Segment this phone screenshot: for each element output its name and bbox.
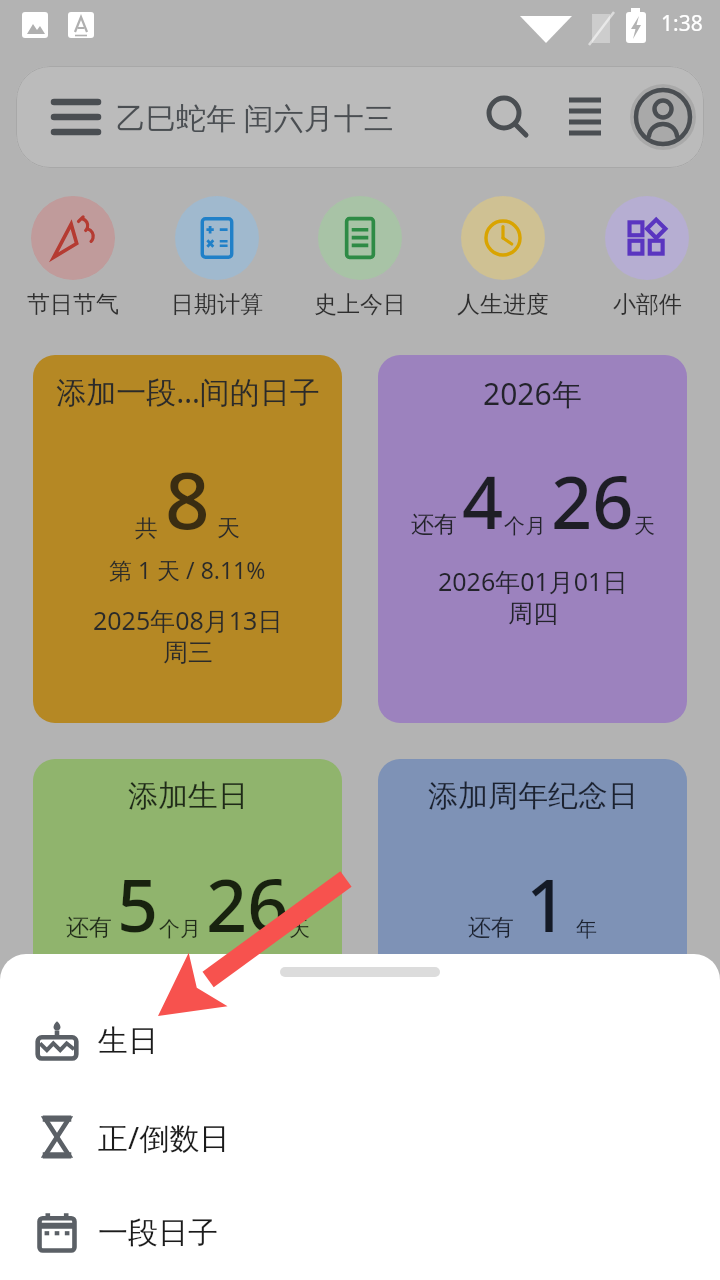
button[interactable]: 一段日子 bbox=[0, 1200, 720, 1266]
staticText: 2025年08月13日 bbox=[93, 603, 283, 637]
button[interactable]: 节日节气 bbox=[3, 196, 143, 319]
staticText: 4 bbox=[462, 452, 504, 550]
staticText: 添加生日 bbox=[128, 777, 248, 815]
button[interactable]: 正/倒数日 bbox=[0, 1104, 720, 1170]
staticText: 2026年 bbox=[483, 373, 582, 414]
staticText: 5 bbox=[117, 855, 159, 953]
staticText: 还有 bbox=[468, 913, 514, 942]
button[interactable]: 人生进度 bbox=[433, 196, 573, 319]
staticText: 26 bbox=[206, 855, 289, 953]
staticText: 天 bbox=[634, 513, 655, 539]
staticText: 天 bbox=[289, 916, 310, 942]
staticText: 8 bbox=[165, 446, 210, 552]
button[interactable]: Menu bbox=[48, 89, 104, 145]
staticText: 共 bbox=[135, 514, 158, 543]
staticText: 日期计算 bbox=[171, 290, 263, 319]
button[interactable]: Account bbox=[630, 84, 696, 150]
button[interactable]: Menu bbox=[16, 66, 704, 168]
button[interactable]: 2026年 bbox=[378, 355, 687, 723]
button[interactable]: 日期计算 bbox=[147, 196, 287, 319]
staticText: 添加周年纪念日 bbox=[428, 777, 638, 815]
button[interactable]: 小部件 bbox=[577, 196, 717, 319]
staticText: 2026年01月01日 bbox=[438, 564, 628, 598]
staticText: 一段日子 bbox=[98, 1214, 218, 1252]
staticText: 26 bbox=[551, 452, 634, 550]
button[interactable]: 生日 bbox=[0, 1008, 720, 1074]
staticText: 小部件 bbox=[613, 290, 682, 319]
staticText: 个月 bbox=[504, 513, 546, 539]
staticText: 史上今日 bbox=[314, 290, 406, 319]
staticText: 乙巳蛇年 闰六月十三 bbox=[116, 97, 394, 138]
staticText: 天 bbox=[217, 514, 240, 543]
staticText: 1:38 bbox=[661, 9, 703, 38]
staticText: 年 bbox=[576, 916, 597, 942]
staticText: 添加一段…间的日子 bbox=[56, 371, 320, 412]
staticText: 正/倒数日 bbox=[98, 1117, 230, 1158]
staticText: 1 bbox=[526, 855, 568, 953]
staticText: 周四 bbox=[508, 598, 558, 629]
staticText: 个月 bbox=[159, 916, 201, 942]
button[interactable]: 添加生日 bbox=[33, 759, 342, 1127]
staticText: 节日节气 bbox=[27, 290, 119, 319]
staticText: 人生进度 bbox=[457, 290, 549, 319]
staticText: 生日 bbox=[98, 1022, 158, 1060]
button[interactable]: 添加一段…间的日子 bbox=[33, 355, 342, 723]
staticText: 还有 bbox=[411, 510, 457, 539]
button[interactable]: 史上今日 bbox=[290, 196, 430, 319]
button[interactable]: Search bbox=[478, 88, 536, 146]
staticText: 还有 bbox=[66, 913, 112, 942]
staticText: 第 1 天 / 8.11% bbox=[109, 554, 266, 585]
staticText: 周三 bbox=[163, 637, 213, 668]
button[interactable]: View options bbox=[556, 88, 614, 146]
button[interactable]: 添加周年纪念日 bbox=[378, 759, 687, 1127]
